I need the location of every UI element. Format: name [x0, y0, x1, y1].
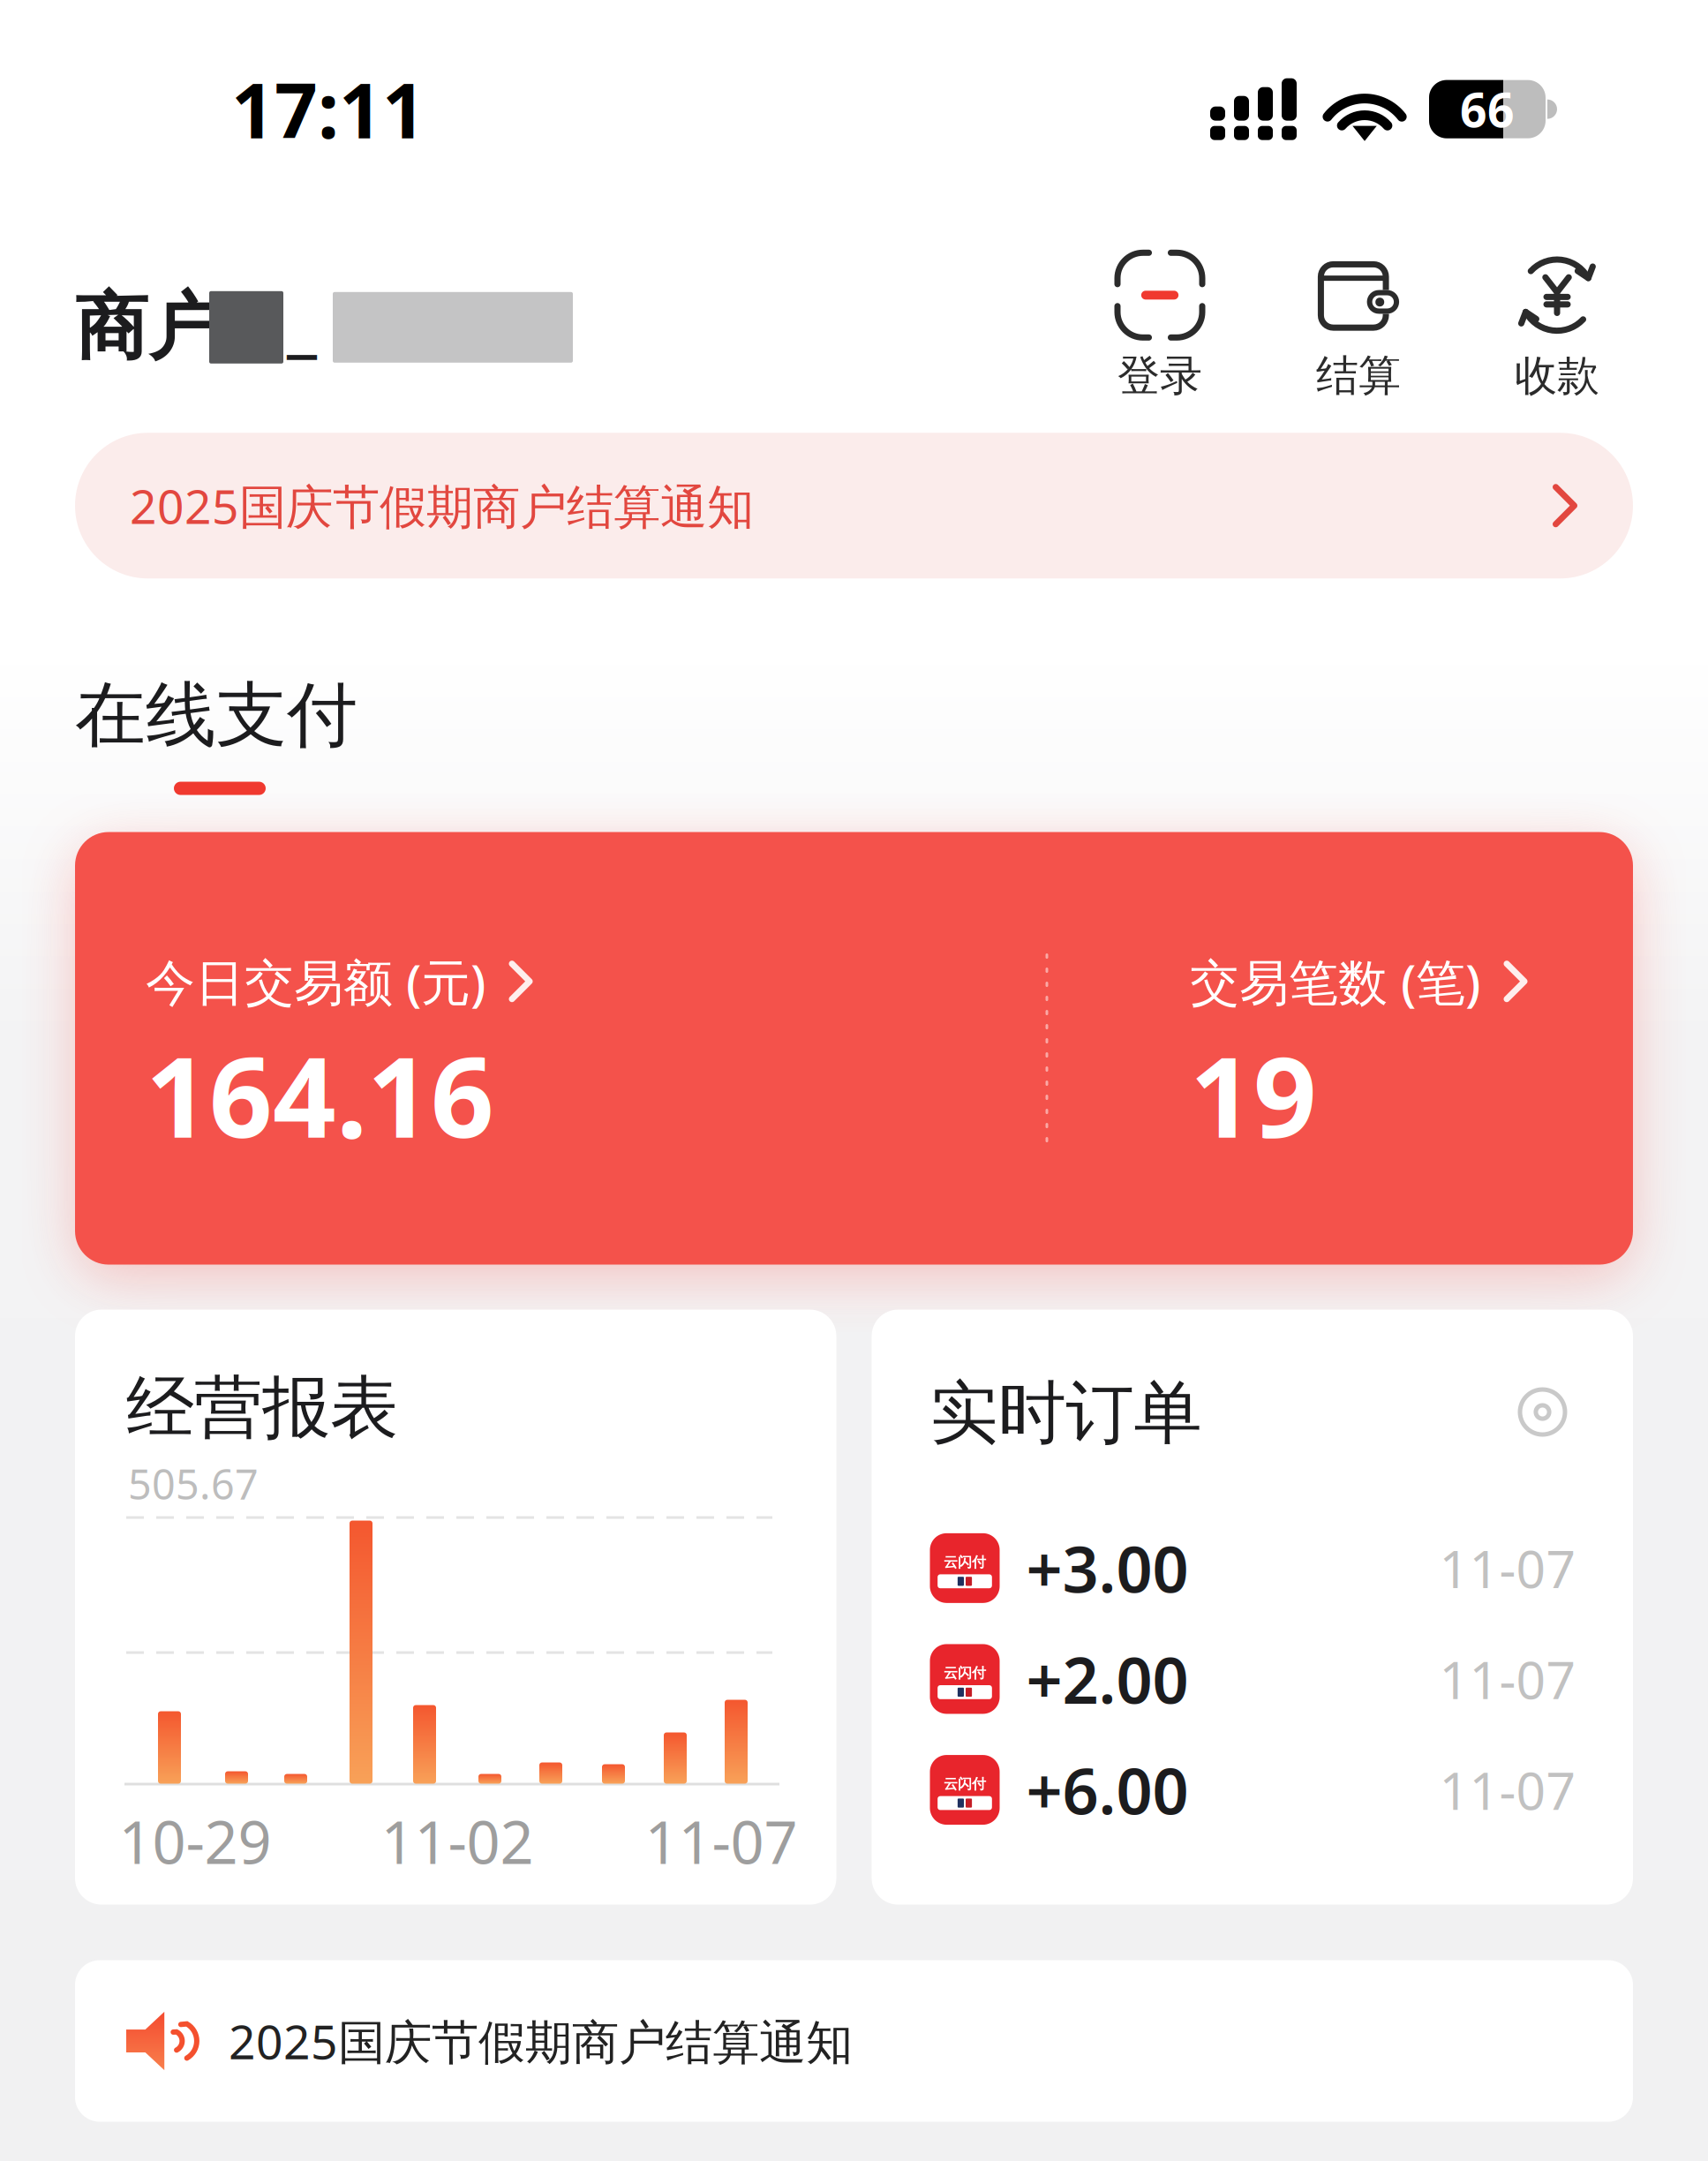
staticText: +3.00 [1026, 1526, 1189, 1610]
staticText: 11-07 [1439, 1755, 1576, 1824]
button[interactable]: 经营报表 [75, 1310, 836, 1905]
button[interactable]: 收款 [1515, 253, 1599, 402]
staticText: 2025国庆节假期商户结算通知 [130, 474, 754, 537]
button[interactable]: 设置 [872, 1310, 921, 1359]
staticText: 登录 [1117, 350, 1202, 402]
staticText: +6.00 [1026, 1748, 1189, 1832]
staticText: +2.00 [1026, 1637, 1189, 1721]
staticText: 2025国庆节假期商户结算通知 [229, 2010, 853, 2072]
staticText: 11-07 [1439, 1645, 1576, 1713]
staticText: 11-02 [381, 1802, 534, 1880]
staticText: 17:11 [231, 59, 425, 159]
staticText: 交易笔数 (笔) [1190, 949, 1480, 1014]
staticText: 实时订单 [930, 1371, 1202, 1455]
staticText: 云闪付 [944, 1553, 986, 1571]
staticText: 收款 [1515, 350, 1599, 402]
staticText: _ [287, 272, 317, 369]
staticText: 云闪付 [944, 1664, 986, 1682]
staticText: 经营报表 [126, 1366, 398, 1450]
staticText: 505.67 [128, 1456, 259, 1511]
staticText: 11-07 [645, 1802, 798, 1880]
staticText: 164.16 [146, 1021, 494, 1168]
staticText: 10-29 [119, 1802, 271, 1880]
staticText: 商户 [75, 282, 222, 372]
button[interactable]: 2025国庆节假期商户结算通知 [75, 1960, 1633, 2122]
staticText: 19 [1190, 1021, 1317, 1168]
staticText: 11-07 [1439, 1534, 1576, 1602]
staticText: 云闪付 [944, 1775, 986, 1793]
button[interactable]: 2025国庆节假期商户结算通知 [75, 433, 1633, 578]
staticText: 66 [1460, 78, 1515, 140]
button[interactable]: 登录 [1117, 253, 1202, 402]
staticText: 今日交易额 (元) [146, 949, 485, 1014]
staticText: 在线支付 [75, 672, 357, 759]
button[interactable]: 今日交易额 (元) [75, 832, 1633, 1265]
staticText: 结算 [1316, 350, 1401, 402]
button[interactable]: 结算 [1316, 253, 1401, 402]
